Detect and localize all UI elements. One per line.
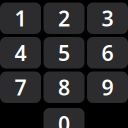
button[interactable]: 0 [43, 108, 84, 128]
button[interactable]: 4 [0, 37, 41, 68]
button[interactable]: 8 [43, 71, 84, 103]
staticText: 7 [14, 73, 26, 101]
button[interactable]: 6 [87, 37, 128, 68]
button[interactable]: 3 [87, 2, 128, 34]
button[interactable]: 7 [0, 71, 41, 103]
staticText: 4 [14, 39, 26, 67]
staticText: 3 [101, 4, 113, 32]
staticText: 2 [58, 4, 70, 32]
button[interactable]: 9 [87, 71, 128, 103]
button[interactable]: 5 [43, 37, 84, 68]
button[interactable]: 1 [0, 2, 41, 34]
staticText: 5 [58, 39, 70, 67]
staticText: 8 [58, 73, 70, 101]
staticText: 0 [58, 110, 70, 128]
staticText: 6 [101, 39, 113, 67]
staticText: 1 [14, 4, 26, 32]
button[interactable]: 2 [43, 2, 84, 34]
staticText: 9 [101, 73, 113, 101]
